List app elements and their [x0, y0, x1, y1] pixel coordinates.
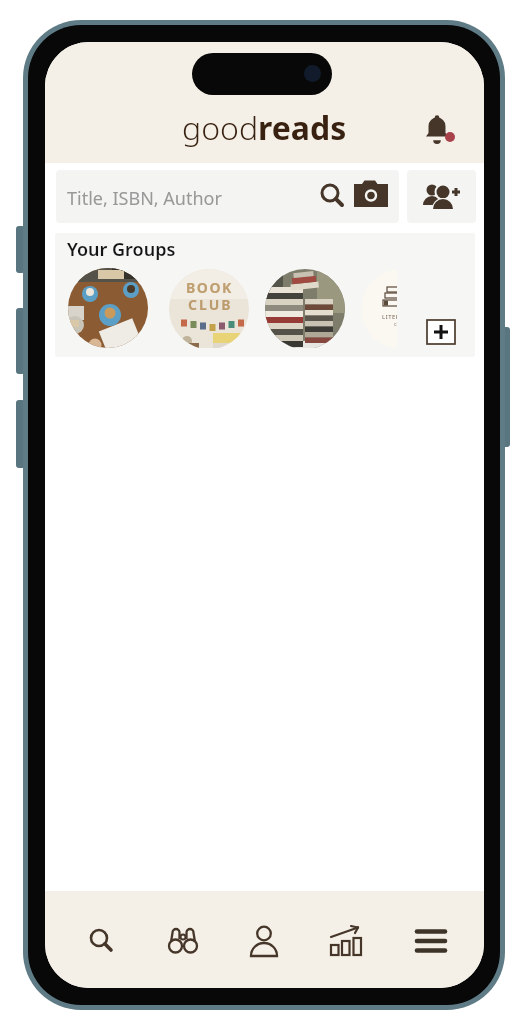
staticText: goodreads: [182, 106, 347, 150]
staticText: Your Groups: [67, 237, 176, 262]
button[interactable]: [407, 170, 476, 223]
staticText: CLUB: [188, 295, 233, 314]
staticText: LITERARY: [382, 313, 397, 321]
button[interactable]: [74, 913, 130, 969]
staticText: club: [394, 321, 397, 328]
button[interactable]: [155, 913, 211, 969]
button[interactable]: [265, 269, 345, 348]
staticText: BOOK: [186, 278, 233, 297]
button[interactable]: Title, ISBN, Author: [56, 170, 399, 223]
button[interactable]: [417, 108, 461, 152]
button[interactable]: [427, 320, 455, 344]
button[interactable]: [403, 913, 459, 969]
button[interactable]: [68, 268, 148, 348]
button[interactable]: [318, 913, 374, 969]
button[interactable]: [236, 913, 292, 969]
staticText: Title, ISBN, Author: [67, 186, 222, 211]
button[interactable]: BOOK: [169, 269, 249, 348]
button[interactable]: LITERARY: [361, 269, 397, 348]
